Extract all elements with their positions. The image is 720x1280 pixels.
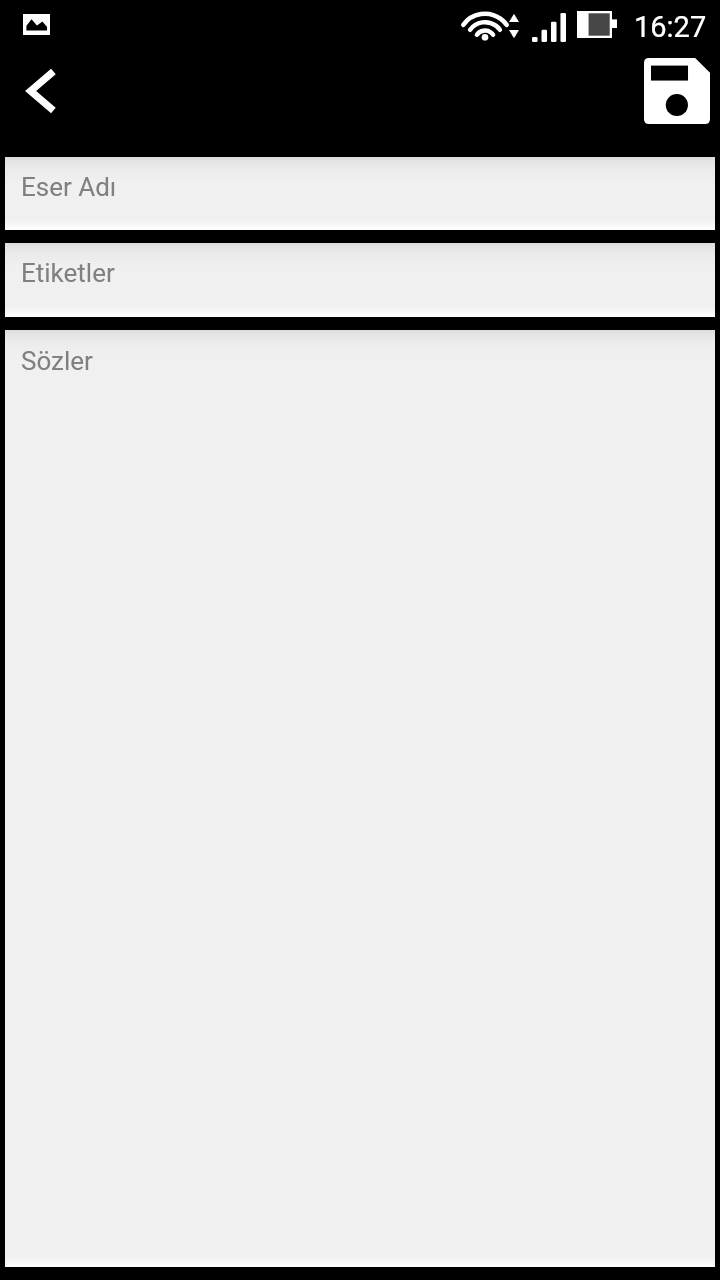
button[interactable]: Etiketler [5,243,715,317]
staticText: Etiketler [21,258,115,288]
button[interactable]: Eser Adı [5,157,715,230]
staticText: 16:27 [634,10,707,44]
button[interactable]: Back [0,52,84,130]
staticText: Eser Adı [21,172,117,202]
staticText: Sözler [21,346,93,376]
button[interactable]: Sözler [5,330,715,1267]
button[interactable]: Save [634,52,720,130]
